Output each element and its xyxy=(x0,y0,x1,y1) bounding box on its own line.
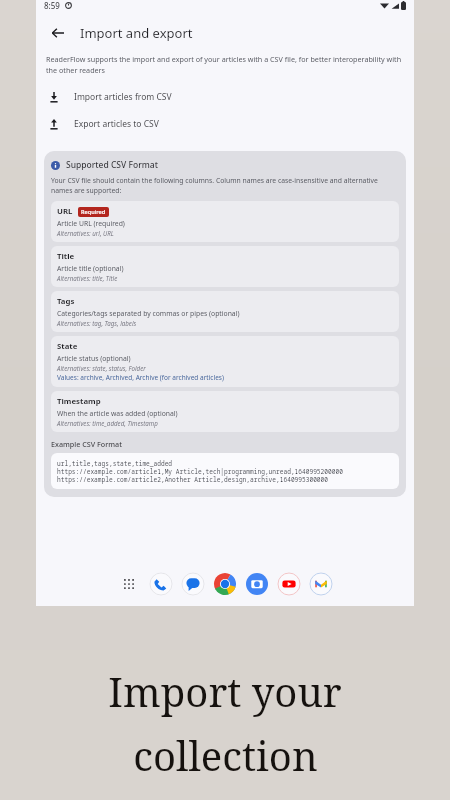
button[interactable]: YouTube xyxy=(277,572,301,596)
staticText: Import your xyxy=(108,664,342,718)
button[interactable]: State xyxy=(51,336,399,387)
staticText: Your CSV file should contain the followi… xyxy=(51,176,399,195)
staticText: Import articles from CSV xyxy=(74,91,172,103)
button[interactable]: Tags xyxy=(51,291,399,332)
staticText: url,title,tags,state,time_added xyxy=(57,459,173,467)
staticText: Export articles to CSV xyxy=(74,118,159,130)
button[interactable]: Timestamp xyxy=(51,391,399,432)
button[interactable]: All apps xyxy=(117,572,141,596)
staticText: Title xyxy=(57,251,75,262)
staticText: Alternatives: url, URL xyxy=(57,229,114,237)
staticText: Categories/tags separated by commas or p… xyxy=(57,309,240,318)
staticText: Article title (optional) xyxy=(57,264,124,273)
staticText: When the article was added (optional) xyxy=(57,409,178,418)
staticText: ReaderFlow supports the import and expor… xyxy=(46,54,404,75)
staticText: Alternatives: time_added, Timestamp xyxy=(57,419,158,427)
staticText: Import and export xyxy=(80,24,193,42)
button[interactable]: URL xyxy=(51,201,399,242)
button[interactable]: Gmail xyxy=(309,572,333,596)
staticText: Example CSV Format xyxy=(51,439,122,449)
staticText: Values: archive, Archived, Archive (for … xyxy=(57,373,224,382)
staticText: https://example.com/article2,Another Art… xyxy=(57,475,329,483)
staticText: Required xyxy=(81,208,106,216)
staticText: Alternatives: state, status, Folder xyxy=(57,364,146,372)
staticText: https://example.com/article1,My Article,… xyxy=(57,467,343,475)
staticText: Alternatives: tag, Tags, labels xyxy=(57,319,137,327)
staticText: Timestamp xyxy=(57,396,101,407)
staticText: URL xyxy=(57,206,73,217)
button[interactable]: Back xyxy=(44,19,72,47)
staticText: Alternatives: title, Title xyxy=(57,274,118,282)
button[interactable]: Import articles from CSV xyxy=(36,83,414,110)
button[interactable]: Camera xyxy=(245,572,269,596)
button[interactable]: Title xyxy=(51,246,399,287)
button[interactable]: Messages xyxy=(181,572,205,596)
staticText: Supported CSV Format xyxy=(66,159,158,171)
button[interactable]: Export articles to CSV xyxy=(36,110,414,137)
staticText: 8:59 xyxy=(44,0,60,11)
button[interactable]: Chrome xyxy=(213,572,237,596)
staticText: Article URL (required) xyxy=(57,219,125,228)
staticText: State xyxy=(57,341,78,352)
staticText: Tags xyxy=(57,296,75,307)
button[interactable]: Phone xyxy=(149,572,173,596)
staticText: Article status (optional) xyxy=(57,354,131,363)
staticText: collection xyxy=(133,728,318,782)
